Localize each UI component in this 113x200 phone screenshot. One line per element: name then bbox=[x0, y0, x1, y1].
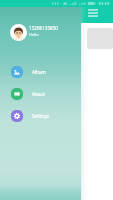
button[interactable]: About bbox=[0, 83, 81, 105]
button[interactable]: Settings bbox=[0, 105, 81, 127]
staticText: Settings bbox=[32, 113, 50, 119]
button[interactable]: Open navigation menu bbox=[88, 9, 98, 17]
staticText: About bbox=[32, 91, 45, 97]
button[interactable]: Album bbox=[0, 61, 81, 83]
staticText: Hello bbox=[29, 32, 39, 37]
button[interactable]: 15269135850 bbox=[0, 7, 81, 50]
staticText: 15269135850 bbox=[29, 25, 58, 31]
staticText: Album bbox=[32, 69, 46, 75]
